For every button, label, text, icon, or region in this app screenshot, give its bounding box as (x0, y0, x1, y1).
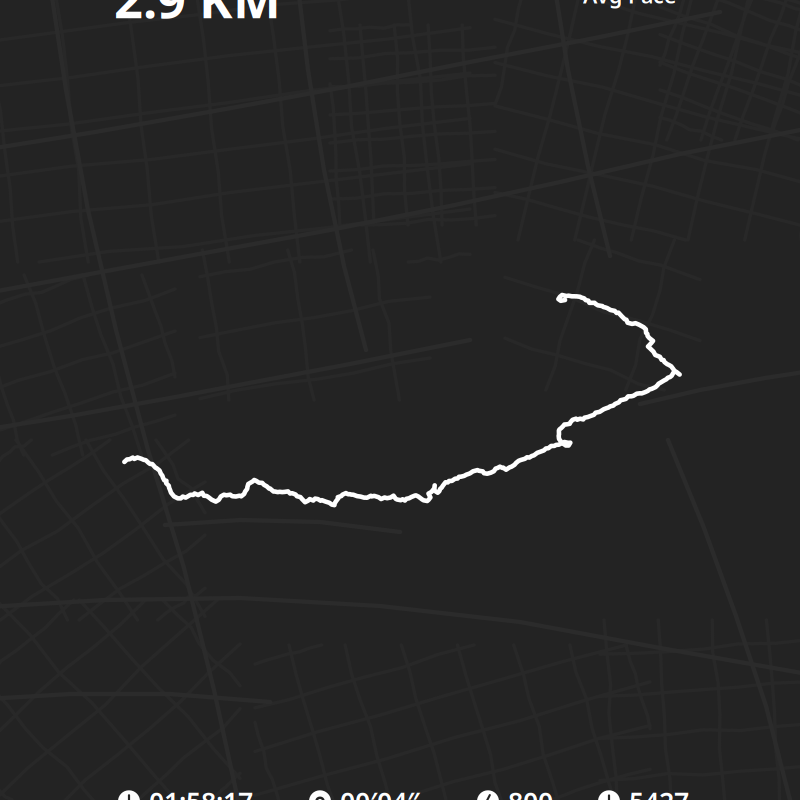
staticText: 00′04″ (340, 784, 420, 800)
button[interactable]: Average pace (309, 784, 420, 800)
staticText: 2.9 KM (114, 0, 281, 32)
button[interactable]: Calories (477, 784, 553, 800)
staticText: 5427 (629, 784, 689, 800)
staticText: Avg Pace (583, 0, 676, 9)
staticText: 01:58:17 (149, 784, 253, 800)
button[interactable]: Steps (598, 784, 689, 800)
staticText: 800 (508, 784, 553, 800)
button[interactable]: Duration (118, 784, 253, 800)
